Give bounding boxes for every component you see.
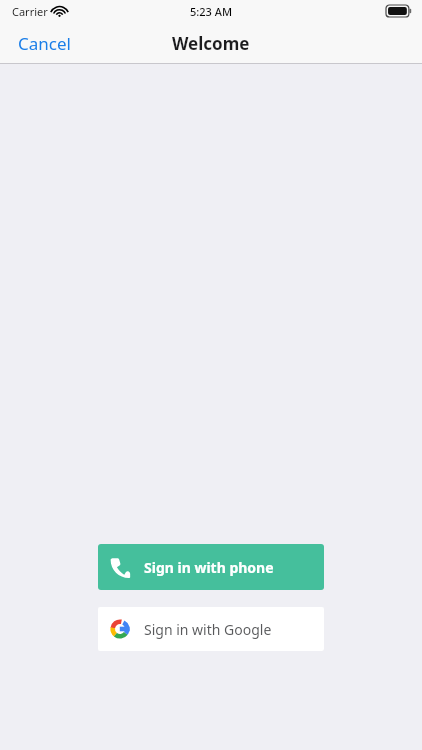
button[interactable]: Google — [98, 607, 324, 651]
staticText: Cancel — [18, 32, 71, 55]
staticText: Carrier — [12, 4, 48, 19]
staticText: Welcome — [172, 32, 250, 55]
other: Phone — [110, 557, 131, 578]
button[interactable]: Phone — [98, 544, 324, 590]
staticText: Sign in with Google — [144, 620, 272, 639]
staticText: 5:23 AM — [190, 4, 233, 19]
button[interactable]: Cancel — [0, 26, 89, 61]
staticText: Sign in with phone — [144, 558, 274, 577]
other: Google — [110, 619, 130, 639]
